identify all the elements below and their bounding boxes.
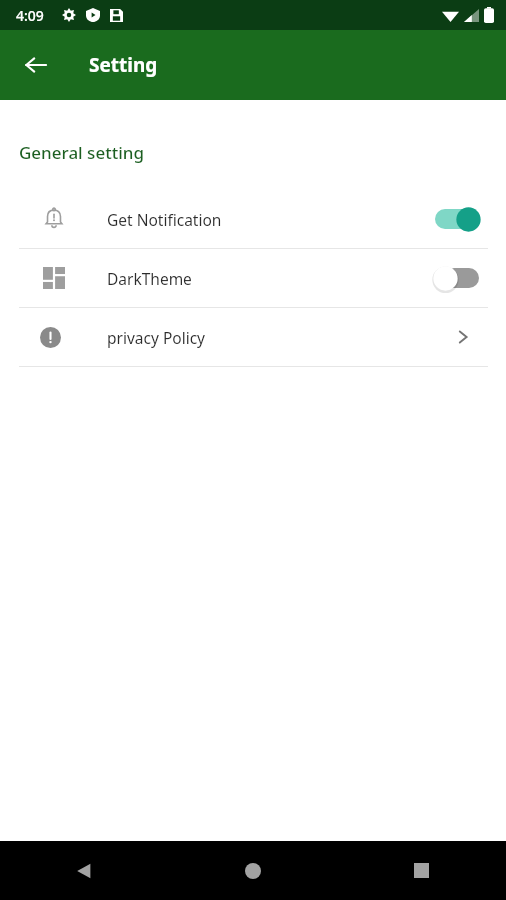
staticText: 4:09 <box>16 6 44 25</box>
button[interactable]: Get Notification <box>0 190 506 248</box>
button[interactable]: Open privacy policy <box>450 324 476 350</box>
button[interactable]: On <box>431 203 483 235</box>
button[interactable]: Recent apps <box>337 841 506 900</box>
staticText: Setting <box>89 52 158 78</box>
button[interactable]: Off <box>431 262 483 294</box>
staticText: DarkTheme <box>107 268 431 289</box>
button[interactable]: Back <box>0 841 168 900</box>
staticText: General setting <box>19 141 144 164</box>
staticText: privacy Policy <box>107 327 450 348</box>
button[interactable]: privacy Policy <box>0 308 506 366</box>
button[interactable]: Home <box>168 841 337 900</box>
staticText: Get Notification <box>107 209 431 230</box>
button[interactable]: DarkTheme <box>0 249 506 307</box>
button[interactable]: Back <box>14 43 58 87</box>
